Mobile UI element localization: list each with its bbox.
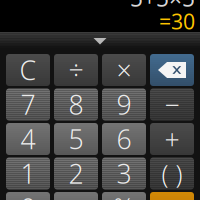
button[interactable]: 6: [102, 123, 146, 155]
button[interactable]: 8: [54, 88, 98, 120]
staticText: ×: [116, 52, 131, 88]
staticText: .: [72, 190, 79, 200]
staticText: ÷: [68, 52, 83, 88]
staticText: =30: [159, 7, 195, 35]
button[interactable]: [150, 54, 194, 86]
staticText: 1: [20, 156, 35, 191]
staticText: −: [164, 87, 179, 122]
button[interactable]: 1: [6, 157, 50, 189]
button[interactable]: 5: [54, 123, 98, 155]
button[interactable]: .: [54, 192, 98, 200]
button[interactable]: ÷: [54, 54, 98, 86]
button[interactable]: =: [150, 192, 194, 200]
staticText: 3: [116, 156, 131, 191]
button[interactable]: −: [150, 88, 194, 120]
button[interactable]: 7: [6, 88, 50, 120]
button[interactable]: 3: [102, 157, 146, 189]
staticText: 5: [68, 121, 83, 157]
button[interactable]: ×: [102, 54, 146, 86]
staticText: +: [164, 121, 179, 157]
staticText: C: [19, 52, 36, 88]
staticText: 7: [20, 87, 35, 122]
button[interactable]: %: [102, 192, 146, 200]
button[interactable]: C: [6, 54, 50, 86]
staticText: 0: [20, 190, 35, 200]
staticText: ( ): [161, 157, 182, 190]
staticText: 9: [116, 87, 131, 122]
button[interactable]: +: [150, 123, 194, 155]
staticText: 6: [116, 121, 131, 157]
staticText: %: [113, 190, 135, 200]
button[interactable]: 2: [54, 157, 98, 189]
button[interactable]: 9: [102, 88, 146, 120]
button[interactable]: 4: [6, 123, 50, 155]
staticText: 4: [20, 121, 35, 157]
staticText: 5+5×5: [130, 0, 195, 13]
staticText: =: [164, 190, 179, 200]
button[interactable]: 0: [6, 192, 50, 200]
button[interactable]: ( ): [150, 157, 194, 189]
staticText: 2: [68, 156, 83, 191]
staticText: 8: [68, 87, 83, 122]
